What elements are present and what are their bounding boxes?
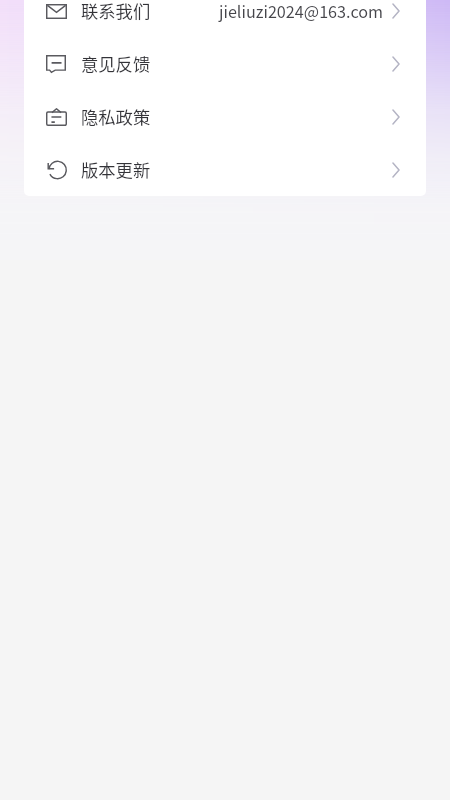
other: 版本更新 [45,159,67,181]
other: Open [392,56,400,72]
staticText: 联系我们 [81,0,151,23]
button[interactable]: 版本更新 [24,143,426,196]
staticText: 意见反馈 [81,51,151,76]
other: Open [392,3,400,19]
staticText: jieliuzi2024@163.com [219,0,384,22]
other: 联系我们 [45,0,67,22]
staticText: 隐私政策 [81,104,151,129]
other: 隐私政策 [45,106,67,128]
other: Open [392,109,400,125]
other: 意见反馈 [45,53,67,75]
button[interactable]: 隐私政策 [24,90,426,143]
button[interactable]: 联系我们 [24,0,426,37]
button[interactable]: 意见反馈 [24,37,426,90]
staticText: 版本更新 [81,157,151,182]
other: Open [392,162,400,178]
